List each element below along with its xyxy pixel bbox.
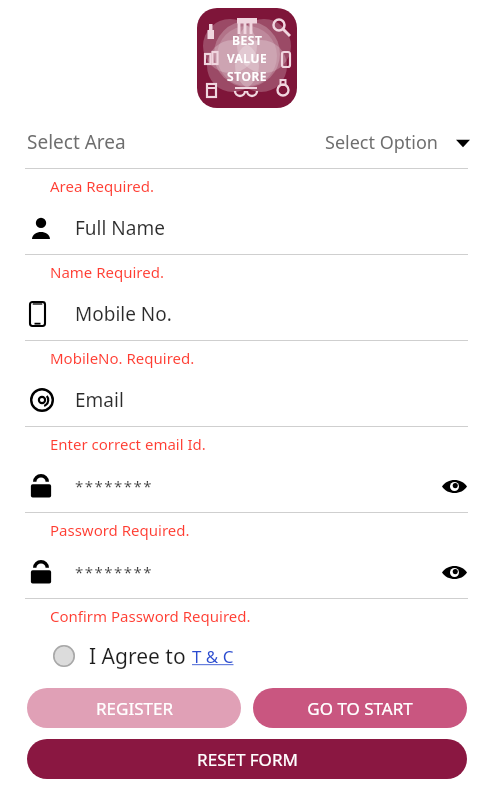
button[interactable]: ******** <box>0 546 494 598</box>
staticText: GO TO START <box>307 697 413 720</box>
staticText: Area Required. <box>50 176 155 196</box>
staticText: Enter correct email Id. <box>50 434 206 454</box>
staticText: ******** <box>75 562 154 582</box>
staticText: Email <box>75 387 124 413</box>
staticText: Select Option <box>325 130 438 155</box>
button[interactable]: ******** <box>0 460 494 512</box>
staticText: MobileNo. Required. <box>50 348 195 368</box>
button[interactable]: GO TO START <box>253 688 467 728</box>
staticText: BEST <box>232 32 263 48</box>
button[interactable]: Agree toggle <box>52 644 76 668</box>
staticText: STORE <box>227 68 268 84</box>
button[interactable]: Full Name <box>0 202 494 254</box>
button[interactable]: Mobile No. <box>0 288 494 340</box>
staticText: Confirm Password Required. <box>50 606 251 626</box>
button[interactable]: Best Value Store logo <box>197 8 297 108</box>
staticText: Name Required. <box>50 262 164 282</box>
button[interactable]: REGISTER <box>27 688 241 728</box>
staticText: T & C <box>192 645 234 668</box>
staticText: RESET FORM <box>197 748 298 771</box>
staticText: I Agree to <box>89 642 192 671</box>
staticText: ******** <box>75 476 154 496</box>
staticText: Password Required. <box>50 520 190 540</box>
button[interactable]: Show password <box>439 557 469 587</box>
staticText: Full Name <box>75 215 165 241</box>
button[interactable]: Show password <box>439 471 469 501</box>
staticText: Select Area <box>27 129 126 155</box>
staticText: VALUE <box>227 50 268 66</box>
button[interactable]: RESET FORM <box>27 739 467 779</box>
button[interactable]: Select Option <box>313 124 494 161</box>
staticText: Mobile No. <box>75 301 172 327</box>
button[interactable]: T & C <box>192 645 234 668</box>
staticText: REGISTER <box>96 697 173 720</box>
button[interactable]: Email <box>0 374 494 426</box>
